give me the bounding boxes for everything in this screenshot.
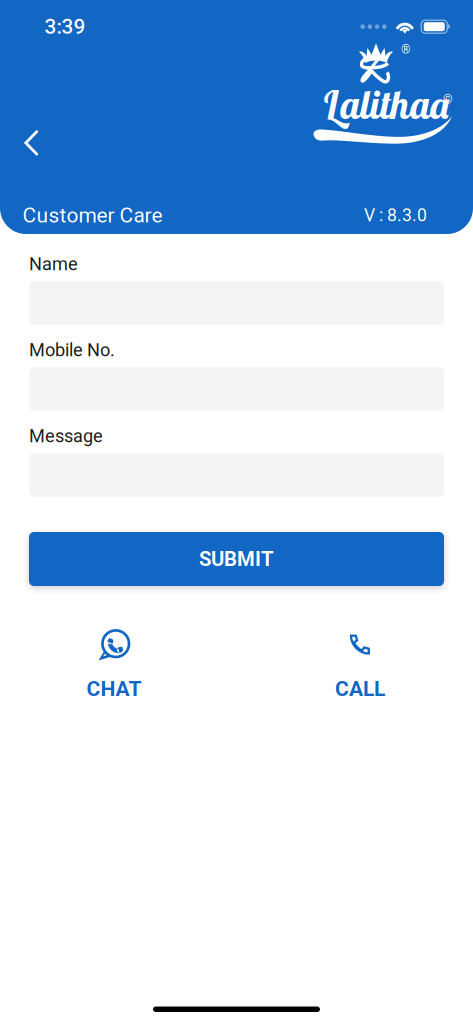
staticText: ®	[401, 42, 410, 57]
staticText: Mobile No.	[29, 339, 115, 361]
staticText: Customer Care	[22, 203, 162, 227]
button[interactable]: CALL	[295, 628, 425, 701]
staticText: ©	[443, 92, 452, 107]
staticText: Lalithaa	[322, 80, 451, 129]
staticText: V : 8.3.0	[364, 205, 427, 225]
staticText: 3:39	[44, 14, 85, 39]
button[interactable]: SUBMIT	[29, 532, 444, 586]
staticText: SUBMIT	[199, 547, 274, 571]
staticText: CHAT	[86, 676, 141, 701]
button[interactable]: Back	[0, 120, 57, 165]
button[interactable]: CHAT	[49, 628, 179, 701]
staticText: Message	[29, 425, 103, 447]
staticText: CALL	[335, 676, 385, 701]
staticText: Name	[29, 253, 78, 275]
